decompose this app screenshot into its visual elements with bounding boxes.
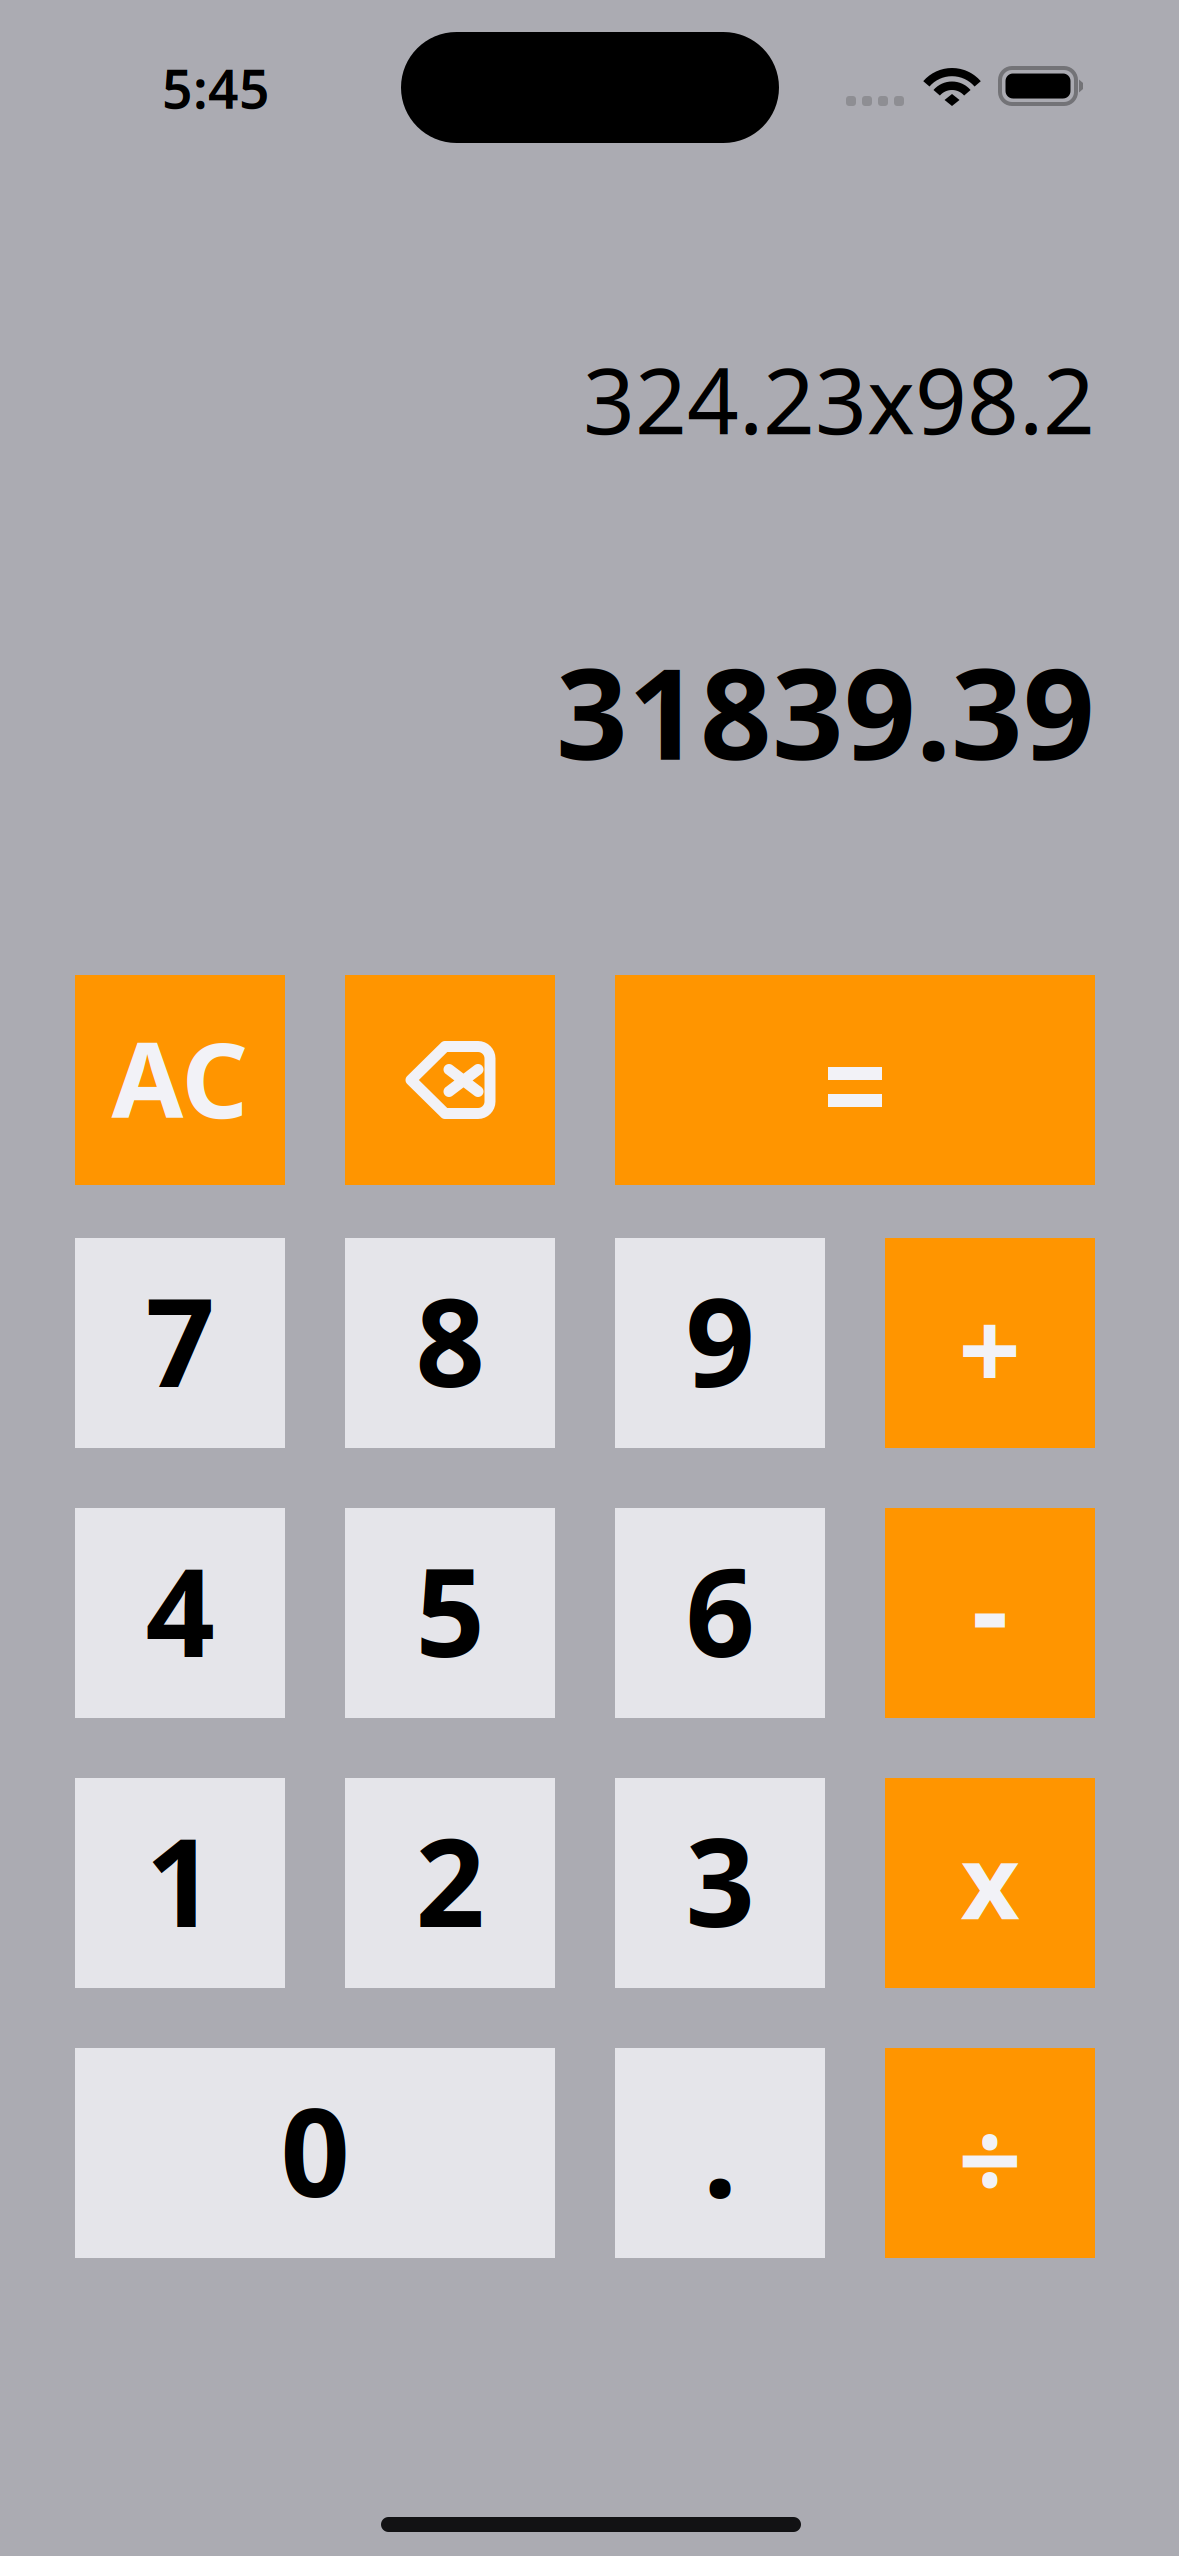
button[interactable]: 4 <box>75 1508 285 1718</box>
button[interactable]: 1 <box>75 1778 285 1988</box>
staticText: 8 <box>415 1259 484 1420</box>
button[interactable]: Divide <box>885 2048 1095 2258</box>
staticText: 9 <box>685 1259 754 1420</box>
button[interactable]: 7 <box>75 1238 285 1448</box>
button[interactable]: AC <box>75 975 285 1185</box>
staticText: 4 <box>145 1529 214 1690</box>
staticText: AC <box>111 1009 248 1147</box>
button[interactable]: 8 <box>345 1238 555 1448</box>
button[interactable]: 6 <box>615 1508 825 1718</box>
button[interactable]: Add <box>885 1238 1095 1448</box>
staticText: 5 <box>415 1529 484 1690</box>
staticText: 7 <box>145 1259 214 1420</box>
staticText: 324.23x98.2 <box>583 339 1095 459</box>
staticText: 6 <box>685 1529 754 1690</box>
staticText: x <box>960 1811 1019 1948</box>
staticText: 1 <box>145 1799 214 1960</box>
button[interactable]: Equals <box>615 975 1095 1185</box>
button[interactable]: 2 <box>345 1778 555 1988</box>
staticText: 5:45 <box>162 53 270 123</box>
button[interactable]: Delete <box>345 975 555 1185</box>
staticText: 2 <box>415 1799 484 1960</box>
staticText: . <box>703 2069 737 2230</box>
staticText: 0 <box>280 2069 349 2230</box>
button[interactable]: 9 <box>615 1238 825 1448</box>
button[interactable]: 5 <box>345 1508 555 1718</box>
staticText: ÷ <box>958 2083 1022 2231</box>
staticText: 31839.39 <box>556 628 1095 794</box>
button[interactable]: . <box>615 2048 825 2258</box>
staticText: + <box>958 1275 1021 1420</box>
button[interactable]: 3 <box>615 1778 825 1988</box>
button[interactable]: Multiply <box>885 1778 1095 1988</box>
staticText: - <box>972 1531 1008 1682</box>
staticText: 3 <box>685 1799 754 1960</box>
button[interactable]: Subtract <box>885 1508 1095 1718</box>
button[interactable]: 0 <box>75 2048 555 2258</box>
